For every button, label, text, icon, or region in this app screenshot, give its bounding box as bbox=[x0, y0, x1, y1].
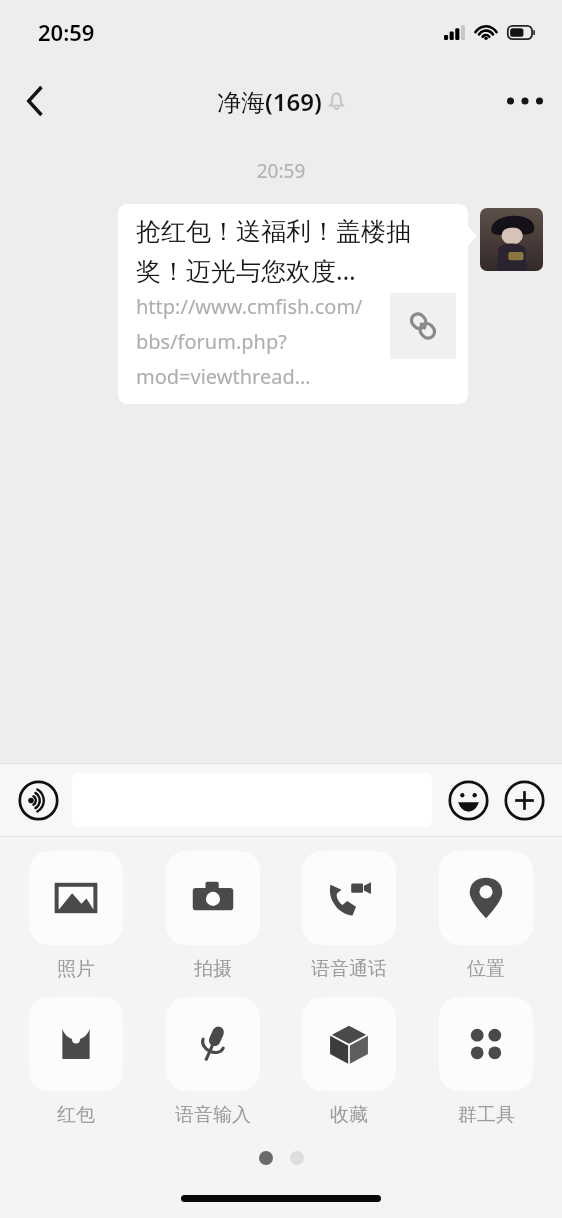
button[interactable]: 红包 bbox=[20, 997, 132, 1127]
staticText: 红包 bbox=[57, 1103, 95, 1127]
staticText: 抢红包！送福利！盖楼抽奖！迈光与您欢度… bbox=[136, 216, 456, 287]
button[interactable]: 拍摄 bbox=[157, 851, 269, 981]
staticText: 拍摄 bbox=[194, 957, 232, 981]
staticText: 照片 bbox=[57, 957, 95, 981]
button[interactable]: Avatar bbox=[480, 208, 543, 271]
staticText: 20:59 bbox=[38, 17, 95, 47]
staticText: 20:59 bbox=[0, 158, 562, 184]
staticText: 收藏 bbox=[330, 1103, 368, 1127]
button[interactable]: 收藏 bbox=[293, 997, 405, 1127]
button[interactable]: 语音输入 bbox=[157, 997, 269, 1127]
staticText: 位置 bbox=[467, 957, 505, 981]
button[interactable]: 位置 bbox=[430, 851, 542, 981]
button[interactable]: More options bbox=[496, 72, 554, 130]
button[interactable]: More functions bbox=[500, 776, 548, 824]
staticText: 语音通话 bbox=[311, 957, 387, 981]
button[interactable]: Back bbox=[6, 72, 64, 130]
button[interactable]: 照片 bbox=[20, 851, 132, 981]
staticText: http://www.cmfish.com/bbs/forum.php?mod=… bbox=[136, 293, 382, 390]
staticText: 群工具 bbox=[458, 1103, 515, 1127]
button[interactable]: 群工具 bbox=[430, 997, 542, 1127]
staticText: 净海(169) bbox=[217, 85, 322, 118]
button[interactable]: 语音通话 bbox=[293, 851, 405, 981]
button[interactable]: Voice message bbox=[14, 776, 62, 824]
button[interactable]: Emoji bbox=[444, 776, 492, 824]
staticText: 语音输入 bbox=[175, 1103, 251, 1127]
button[interactable]: 抢红包！送福利！盖楼抽奖！迈光与您欢度… bbox=[118, 204, 468, 404]
